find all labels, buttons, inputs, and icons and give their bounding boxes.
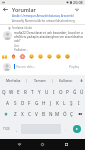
button[interactable]: J bbox=[47, 97, 54, 108]
button[interactable]: V bbox=[33, 108, 40, 119]
staticText: P bbox=[66, 89, 69, 95]
button[interactable]: Back bbox=[15, 140, 24, 149]
button[interactable]: H bbox=[40, 97, 47, 108]
button[interactable]: Backspace bbox=[75, 108, 85, 119]
staticText: O bbox=[59, 89, 63, 95]
button[interactable]: React bbox=[10, 53, 17, 60]
button[interactable]: G bbox=[33, 97, 40, 108]
staticText: G bbox=[35, 100, 39, 106]
button[interactable]: Ç bbox=[68, 108, 75, 119]
staticText: cok? bbox=[14, 39, 21, 43]
button[interactable]: Shift bbox=[0, 108, 11, 119]
staticText: Z bbox=[14, 111, 17, 117]
button[interactable]: React bbox=[55, 53, 62, 60]
button[interactable]: React bbox=[64, 53, 71, 60]
staticText: ofsiltk w yazlapin atacdanghoo vm atacrl… bbox=[14, 35, 83, 39]
button[interactable]: Collapse bbox=[72, 5, 81, 14]
staticText: Merhaba bbox=[6, 78, 21, 83]
button[interactable]: K bbox=[54, 97, 61, 108]
staticText: Amazdly Nanemal Ache antaarildnahoolmeg bbox=[12, 19, 75, 23]
staticText: V bbox=[35, 111, 38, 117]
button[interactable]: Ü bbox=[78, 86, 85, 97]
staticText: K bbox=[56, 100, 59, 106]
staticText: Yorum ekle... bbox=[16, 65, 36, 69]
staticText: ?123 bbox=[3, 127, 10, 131]
button[interactable]: Tamam bbox=[27, 75, 52, 86]
staticText: I bbox=[78, 100, 80, 106]
button[interactable]: Voice input bbox=[78, 75, 85, 86]
button[interactable]: M bbox=[54, 108, 61, 119]
staticText: J bbox=[50, 100, 52, 106]
staticText: H bbox=[42, 100, 46, 106]
staticText: D bbox=[21, 100, 25, 106]
button[interactable]: Recents bbox=[62, 140, 71, 149]
button[interactable]: D bbox=[19, 97, 26, 108]
button[interactable]: Kullanıcı bbox=[53, 75, 78, 86]
staticText: . bbox=[65, 127, 66, 132]
staticText: W bbox=[9, 89, 14, 95]
staticText: I bbox=[53, 89, 55, 95]
staticText: L bbox=[63, 100, 66, 106]
button[interactable]: O bbox=[57, 86, 64, 97]
button[interactable]: Paylaş bbox=[67, 63, 82, 70]
button[interactable]: T bbox=[29, 86, 36, 97]
staticText: Ü bbox=[80, 89, 84, 95]
button[interactable]: Back bbox=[1, 5, 10, 14]
button[interactable]: Z bbox=[11, 108, 19, 119]
staticText: Q bbox=[2, 89, 6, 95]
staticText: X bbox=[21, 111, 24, 117]
staticText: S bbox=[14, 100, 17, 106]
button[interactable]: React bbox=[28, 53, 35, 60]
staticText: Yorumlar bbox=[12, 6, 36, 13]
button[interactable]: I bbox=[50, 86, 57, 97]
button[interactable]: Ğ bbox=[71, 86, 78, 97]
staticText: Ç bbox=[70, 111, 73, 117]
button[interactable]: U bbox=[43, 86, 50, 97]
staticText: E bbox=[17, 89, 20, 95]
staticText: C bbox=[28, 111, 31, 117]
button[interactable]: R bbox=[22, 86, 29, 97]
staticText: Sıralama ölçütü bbox=[12, 26, 33, 30]
button[interactable]: W bbox=[8, 86, 15, 97]
staticText: Ş bbox=[70, 100, 73, 106]
button[interactable]: Y bbox=[36, 86, 43, 97]
button[interactable]: Ö bbox=[61, 108, 68, 119]
button[interactable]: ?123 bbox=[0, 119, 13, 139]
button[interactable]: React bbox=[19, 53, 26, 60]
staticText: Grit bbox=[14, 44, 19, 48]
staticText: mafia22 Donutlarat et uek basardan, bood… bbox=[14, 31, 83, 35]
button[interactable]: Ş bbox=[68, 97, 75, 108]
button[interactable]: Send bbox=[73, 125, 81, 133]
button[interactable]: I bbox=[75, 97, 82, 108]
button[interactable]: React bbox=[1, 53, 8, 60]
staticText: M bbox=[55, 111, 60, 117]
button[interactable]: Q bbox=[0, 86, 8, 97]
staticText: T bbox=[31, 89, 34, 95]
button[interactable]: X bbox=[19, 108, 26, 119]
button[interactable]: C bbox=[26, 108, 33, 119]
staticText: F bbox=[28, 100, 31, 106]
staticText: N bbox=[49, 111, 53, 117]
button[interactable]: L bbox=[61, 97, 68, 108]
staticText: , bbox=[16, 127, 17, 132]
button[interactable]: N bbox=[47, 108, 54, 119]
button[interactable]: E bbox=[15, 86, 22, 97]
button[interactable]: A bbox=[3, 97, 11, 108]
button[interactable]: Merhaba bbox=[0, 75, 26, 86]
button[interactable]: Sıralama ölçütü bbox=[7, 26, 34, 30]
button[interactable]: React bbox=[37, 53, 44, 60]
button[interactable]: , bbox=[13, 119, 20, 139]
staticText: Tamam bbox=[34, 78, 46, 83]
button[interactable]: React bbox=[46, 53, 53, 60]
button[interactable]: S bbox=[11, 97, 19, 108]
button[interactable]: B bbox=[40, 108, 47, 119]
button[interactable]: Home bbox=[38, 140, 47, 149]
staticText: B bbox=[42, 111, 45, 117]
staticText: Ö bbox=[63, 111, 67, 117]
button[interactable]: F bbox=[26, 97, 33, 108]
button[interactable]: P bbox=[64, 86, 71, 97]
staticText: Ğ bbox=[73, 89, 77, 95]
staticText: Kullanıcı bbox=[59, 78, 73, 83]
